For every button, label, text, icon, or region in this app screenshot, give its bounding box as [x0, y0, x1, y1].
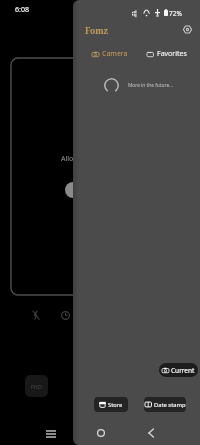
staticText: More in the future...: [128, 82, 173, 89]
button[interactable]: Date stamp: [144, 397, 186, 412]
button[interactable]: FHD: [25, 375, 48, 397]
button[interactable]: Camera: [90, 46, 130, 62]
button[interactable]: Store: [94, 397, 128, 412]
staticText: Fomz: [85, 25, 109, 37]
staticText: 72%: [169, 9, 182, 18]
button[interactable]: Current: [159, 363, 198, 377]
staticText: Current: [171, 366, 195, 375]
staticText: FHD: [31, 383, 42, 390]
staticText: Store: [108, 401, 123, 409]
button[interactable]: Back: [138, 420, 163, 445]
button[interactable]: Favorites: [145, 46, 189, 62]
staticText: 6:08: [15, 5, 29, 15]
button[interactable]: Recents: [38, 421, 63, 445]
staticText: Favorites: [157, 49, 187, 59]
staticText: Camera: [102, 49, 128, 59]
staticText: Allow: [61, 154, 79, 164]
button[interactable]: Home: [88, 420, 113, 445]
button[interactable]: Settings: [180, 22, 195, 37]
staticText: Date stamp: [154, 401, 186, 409]
